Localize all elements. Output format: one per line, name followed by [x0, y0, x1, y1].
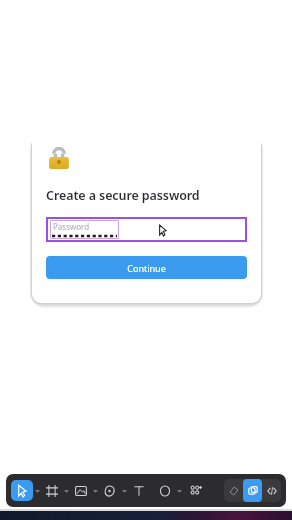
button[interactable]: Comment tool — [155, 480, 175, 501]
button[interactable]: Components — [186, 480, 206, 501]
button[interactable]: More options — [120, 480, 129, 501]
staticText: Password — [53, 221, 90, 232]
button[interactable]: Pen tool — [100, 480, 120, 501]
button[interactable]: Shape tool — [71, 480, 91, 501]
button[interactable]: Move tool — [11, 480, 33, 501]
staticText: Continue — [127, 262, 166, 274]
button[interactable]: More options — [91, 480, 100, 501]
button[interactable]: Frame tool — [42, 480, 62, 501]
button[interactable]: More options — [175, 480, 184, 501]
button[interactable]: Actions — [224, 479, 243, 502]
button[interactable]: More options — [33, 480, 42, 501]
button[interactable]: Code — [262, 479, 281, 502]
button[interactable]: Password — [46, 217, 247, 242]
button[interactable]: More options — [62, 480, 71, 501]
staticText: Create a secure password — [46, 187, 200, 204]
button[interactable]: Dev mode — [243, 479, 262, 502]
button[interactable]: Continue — [46, 256, 247, 279]
button[interactable]: Text tool — [129, 480, 149, 501]
